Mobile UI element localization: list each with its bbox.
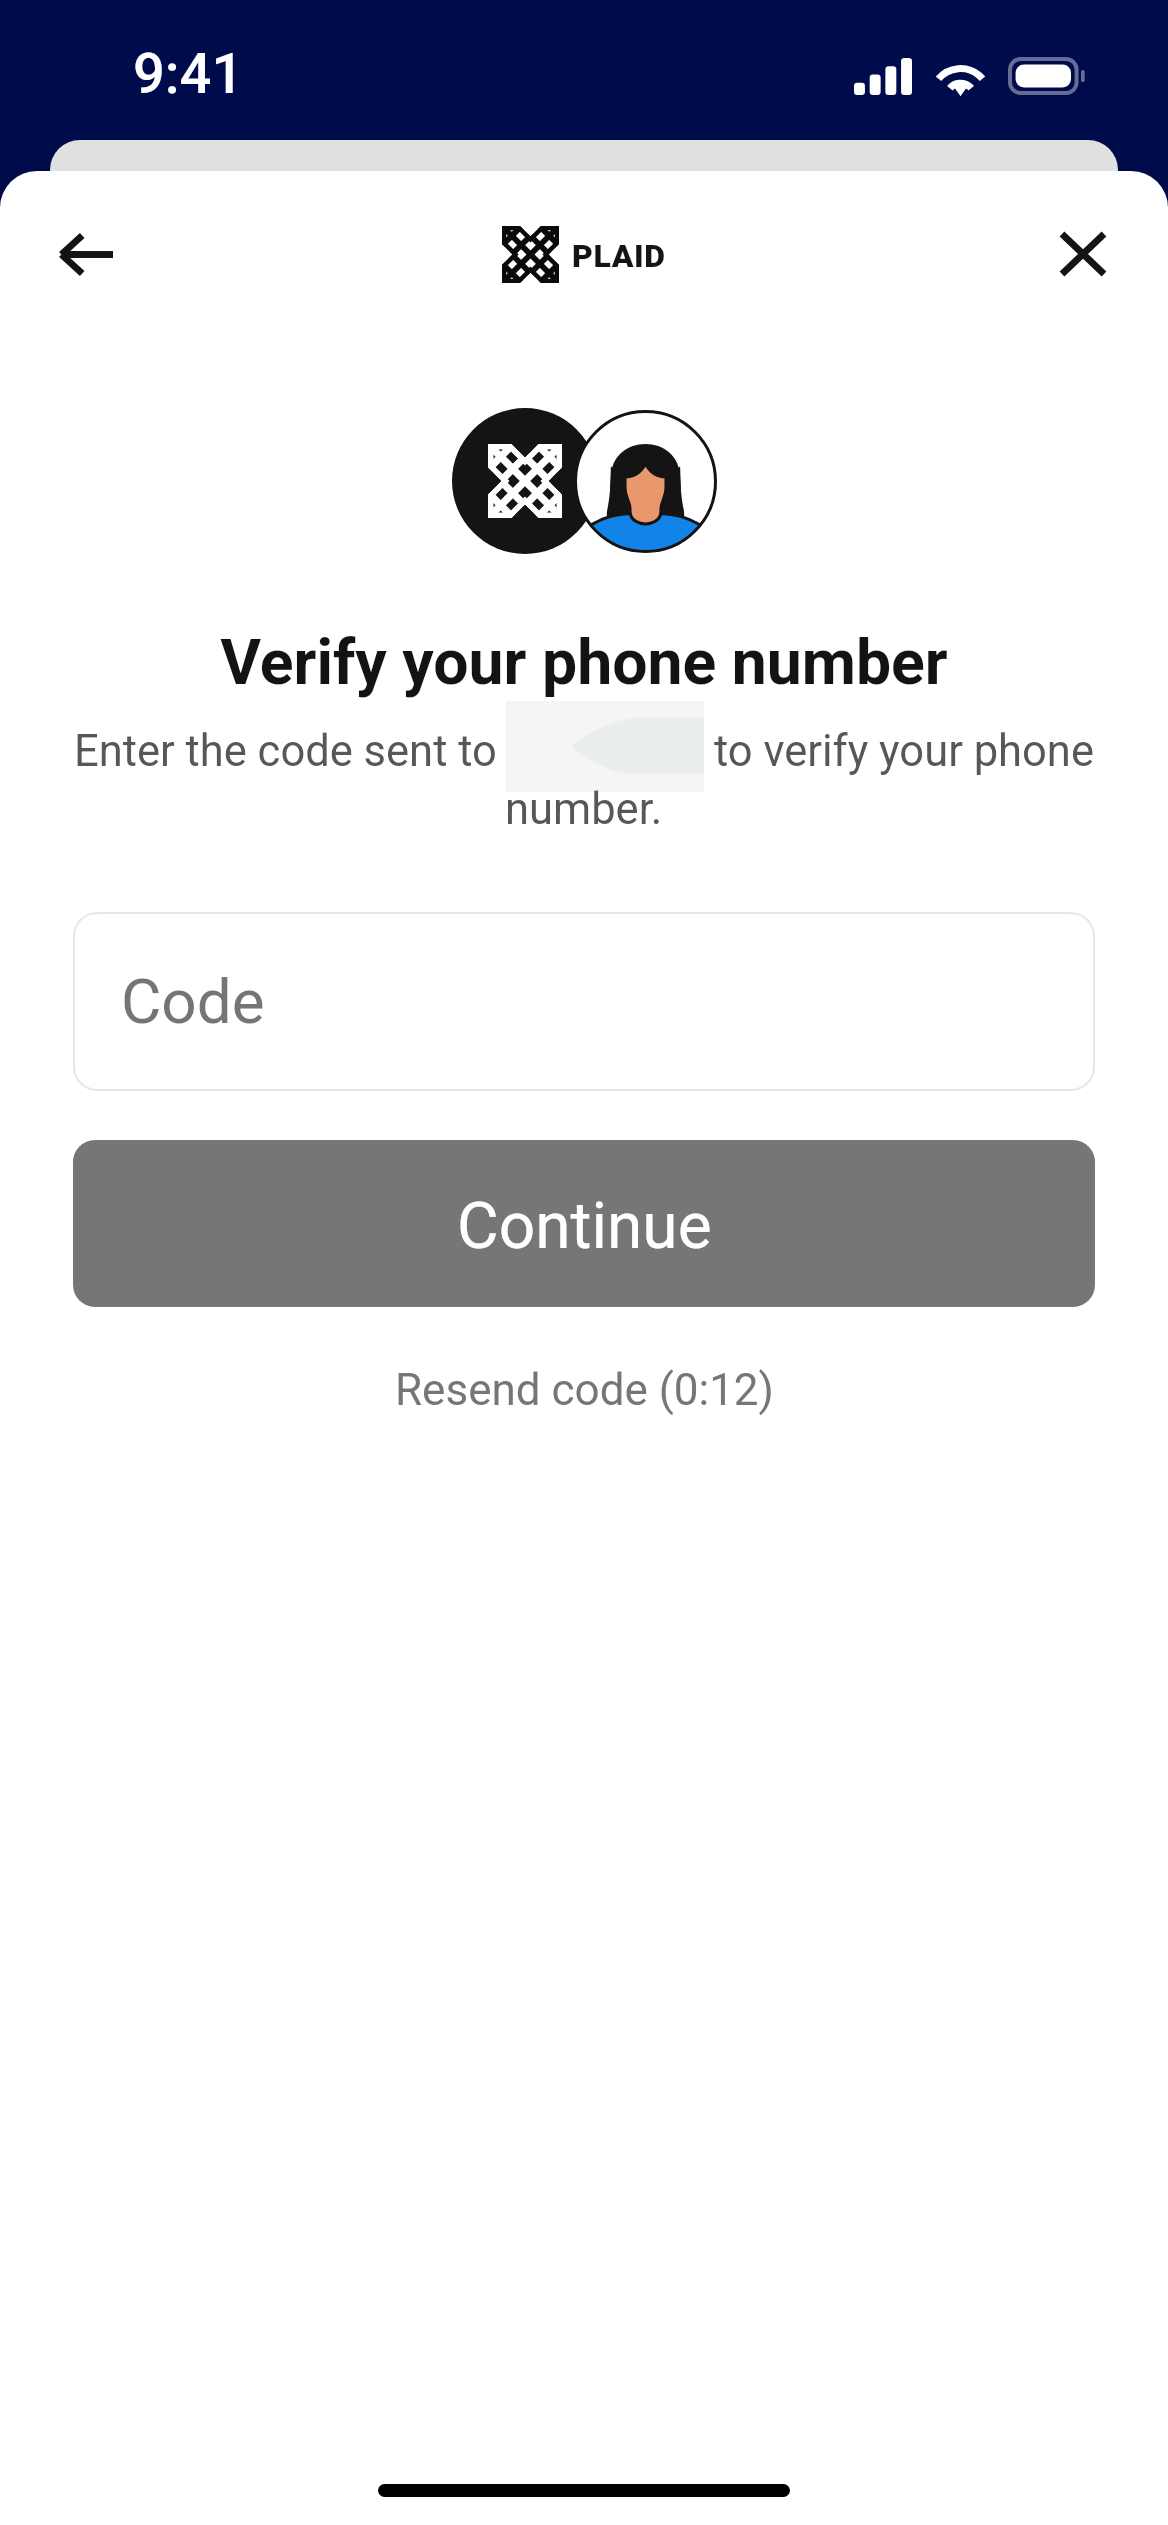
staticText: PLAID <box>572 237 666 275</box>
button[interactable]: Back <box>26 195 144 313</box>
staticText: number. <box>505 784 663 835</box>
staticText: Resend code (0:12) <box>395 1364 774 1416</box>
button[interactable]: Resend code (0:12) <box>371 1352 798 1428</box>
staticText: 9:41 <box>133 41 244 107</box>
button[interactable]: Close <box>1024 195 1142 313</box>
button[interactable]: Continue <box>73 1140 1095 1307</box>
button[interactable]: Code <box>73 912 1095 1091</box>
staticText: Continue <box>457 1189 712 1264</box>
staticText: to verify your phone <box>714 726 1094 777</box>
staticText: Enter the code sent to <box>74 726 497 777</box>
staticText: Verify your phone number <box>0 626 1168 699</box>
staticText: Code <box>121 965 265 1038</box>
